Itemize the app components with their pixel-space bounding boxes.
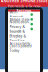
staticText: that needs a fix now xyxy=(7,3,40,8)
button[interactable]: Sounds & Haptics xyxy=(8,31,40,36)
staticText: Display & Text Size xyxy=(9,34,26,43)
button[interactable]: Display & Text Size xyxy=(8,36,40,41)
staticText: Last Updated Today xyxy=(9,43,31,53)
staticText: Wi-Fi Network xyxy=(9,10,23,19)
button[interactable]: Accessibility xyxy=(8,41,40,46)
staticText: Sounds & Haptics xyxy=(9,29,25,38)
staticText: Settings xyxy=(16,8,31,13)
button[interactable]: Last Updated Today xyxy=(8,46,40,50)
button[interactable]: Privacy & Security xyxy=(8,26,40,31)
staticText: Privacy & Security xyxy=(9,24,25,34)
button[interactable]: Mobile Data xyxy=(8,17,40,22)
staticText: Mobile Data xyxy=(9,17,29,22)
button[interactable]: Notifications xyxy=(8,22,40,26)
staticText: Notifications xyxy=(9,19,29,29)
staticText: Accessibility xyxy=(9,41,30,46)
staticText: ANOTHER IPHONE ISSUE xyxy=(0,0,47,3)
button[interactable]: Wi-Fi Network xyxy=(8,12,40,17)
